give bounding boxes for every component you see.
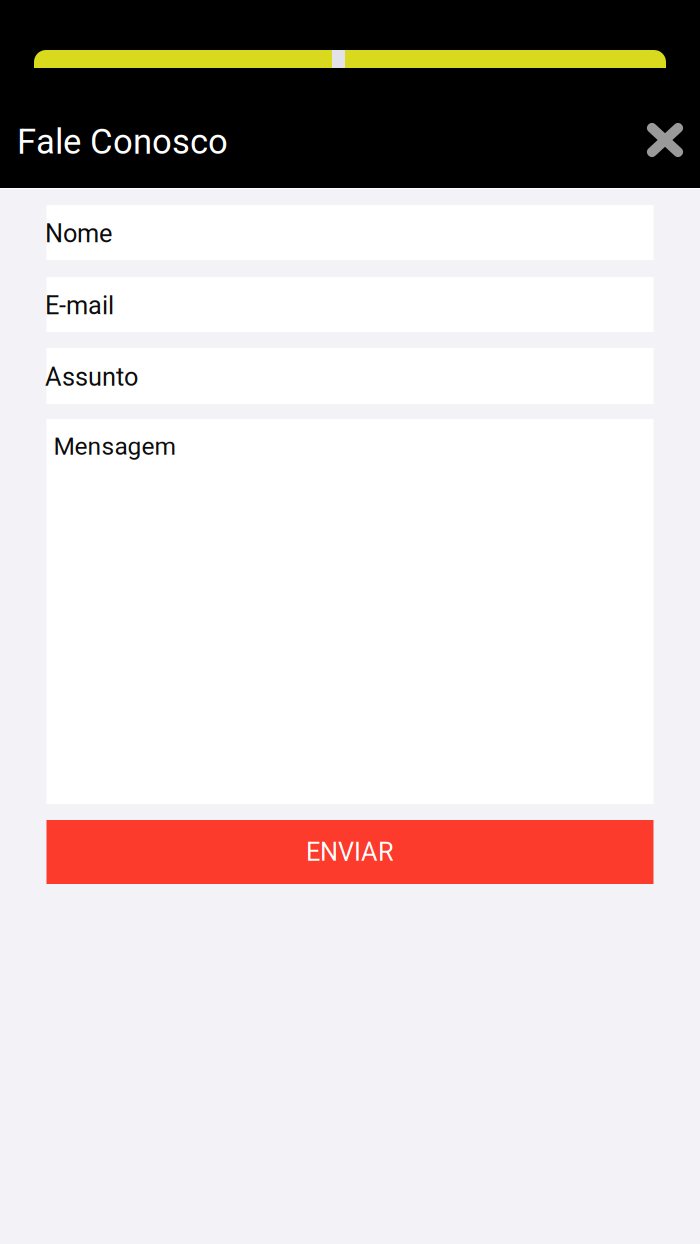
staticText: Mensagem — [53, 432, 176, 461]
button[interactable]: Assunto — [46, 348, 653, 404]
staticText: ENVIAR — [306, 837, 394, 867]
staticText: Nome — [45, 219, 112, 248]
button[interactable]: ENVIAR — [46, 820, 653, 884]
button[interactable]: Mensagem — [46, 419, 653, 804]
button[interactable]: Close — [637, 114, 693, 170]
button[interactable]: E-mail — [46, 277, 653, 332]
button[interactable]: Nome — [46, 205, 653, 260]
staticText: E-mail — [45, 291, 114, 320]
staticText: Fale Conosco — [17, 122, 228, 162]
staticText: Assunto — [45, 362, 138, 392]
